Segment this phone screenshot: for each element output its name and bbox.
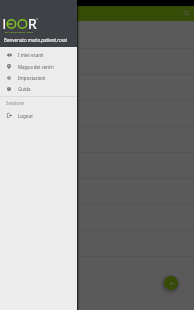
button[interactable]: Search [179,6,194,21]
button[interactable]: Add [164,276,178,290]
staticText: Logout [18,113,33,119]
staticText: Guida [18,86,31,92]
staticText: BY PROSTHETIC AREA [5,30,34,33]
button[interactable]: Mappa dei centri [0,61,77,72]
button[interactable] [0,231,194,257]
staticText: Mappa dei centri [18,64,54,70]
button[interactable]: I miei esami [0,49,77,60]
staticText: Sessione [6,100,25,106]
staticText: Impostazioni [18,75,46,81]
staticText: I miei esami [18,52,44,58]
button[interactable]: Guida [0,83,77,94]
button[interactable] [0,101,194,127]
staticText: Benvenuto mario.patient.rossi [4,37,68,43]
button[interactable]: Impostazioni [0,72,77,83]
button[interactable] [0,205,194,231]
button[interactable] [0,127,194,153]
button[interactable] [0,153,194,179]
button[interactable] [0,23,194,49]
button[interactable] [0,179,194,205]
staticText: R [28,14,37,33]
button[interactable] [0,75,194,101]
button[interactable] [0,49,194,75]
button[interactable]: Logout [0,110,77,121]
